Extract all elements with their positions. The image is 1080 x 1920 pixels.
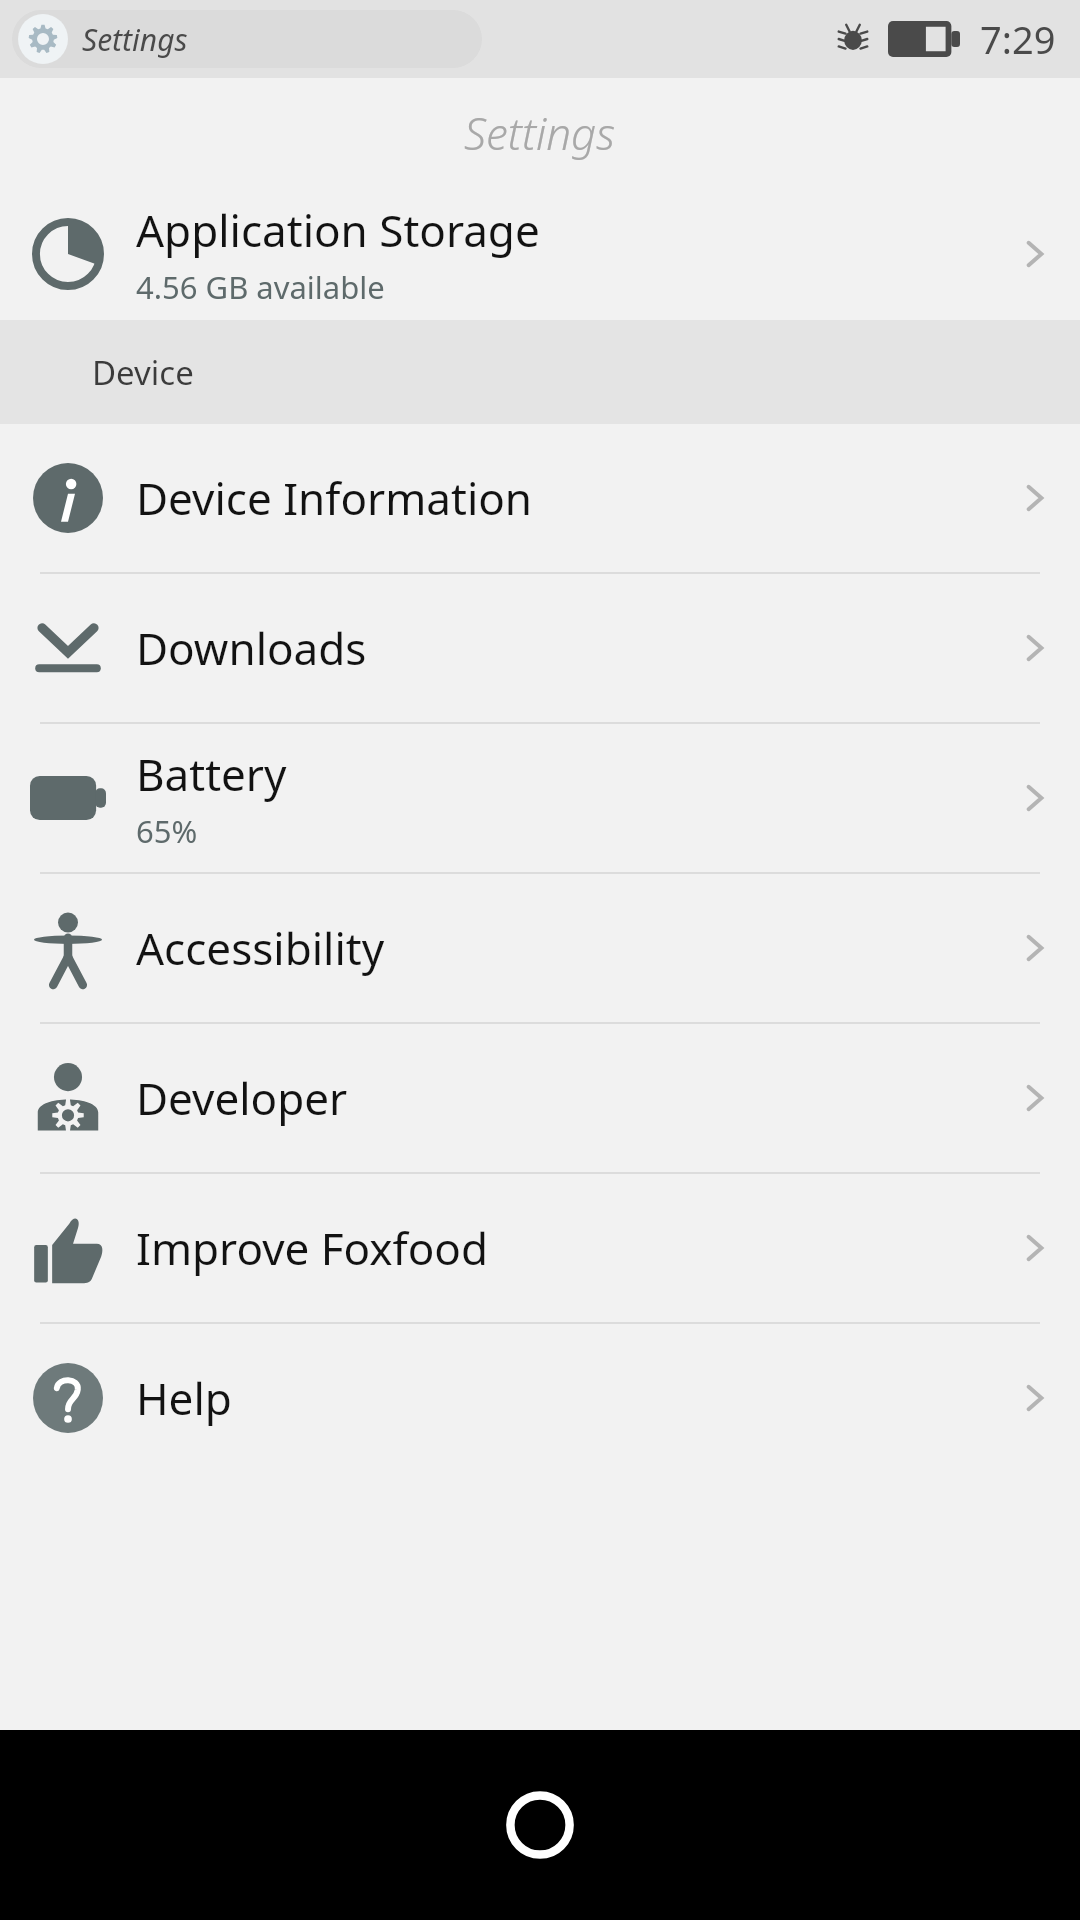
staticText: Improve Foxfood [136,1218,489,1278]
button[interactable]: Home [492,1777,588,1873]
staticText: Application Storage [136,200,540,260]
button[interactable]: Help [0,1324,1080,1472]
button[interactable]: Accessibility [0,874,1080,1022]
button[interactable]: Downloads [0,574,1080,722]
staticText: 7:29 [980,13,1056,65]
button[interactable]: Improve Foxfood [0,1174,1080,1322]
staticText: Battery [136,744,287,804]
staticText: Downloads [136,618,367,678]
staticText: 65% [136,810,198,852]
button[interactable]: Battery [0,724,1080,872]
staticText: Settings [464,103,616,163]
staticText: 4.56 GB available [136,266,385,308]
staticText: Settings [82,19,188,60]
staticText: Help [136,1368,232,1428]
staticText: Developer [136,1068,348,1128]
staticText: Accessibility [136,918,385,978]
button[interactable]: Device Information [0,424,1080,572]
button[interactable]: Developer [0,1024,1080,1172]
staticText: Device Information [136,468,533,528]
button[interactable]: Application Storage [0,188,1080,320]
staticText: Device [92,350,194,395]
